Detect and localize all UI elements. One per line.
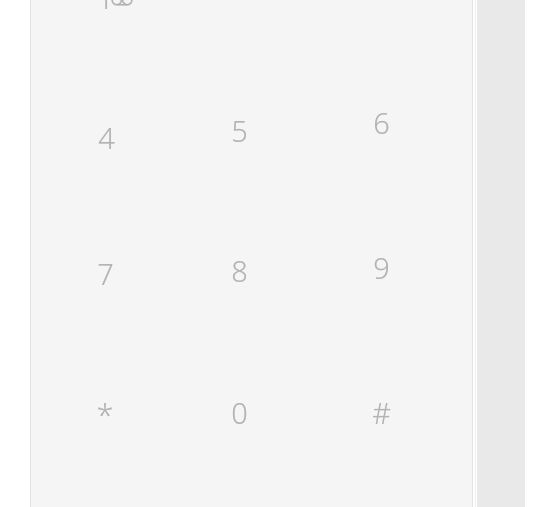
button[interactable]: 9 <box>322 208 440 326</box>
staticText: 5 <box>231 111 248 150</box>
staticText: 1 <box>97 0 114 17</box>
button[interactable]: 8 <box>180 211 298 329</box>
button[interactable]: 0 <box>180 353 298 471</box>
button[interactable]: 5 <box>180 71 298 189</box>
button[interactable]: Voicemail <box>111 0 133 12</box>
staticText: # <box>372 393 391 432</box>
staticText: 0 <box>231 393 248 432</box>
staticText: 7 <box>97 254 114 293</box>
staticText: 4 <box>98 118 115 157</box>
button[interactable]: 6 <box>322 63 440 181</box>
button[interactable]: 4 <box>47 78 165 196</box>
staticText: 9 <box>373 248 390 287</box>
button[interactable]: * <box>46 355 164 473</box>
staticText: 6 <box>373 103 390 142</box>
button[interactable]: 7 <box>46 214 164 332</box>
staticText: 8 <box>231 251 248 290</box>
button[interactable]: 1 <box>46 0 164 56</box>
staticText: * <box>96 393 114 435</box>
button[interactable]: # <box>322 353 440 471</box>
